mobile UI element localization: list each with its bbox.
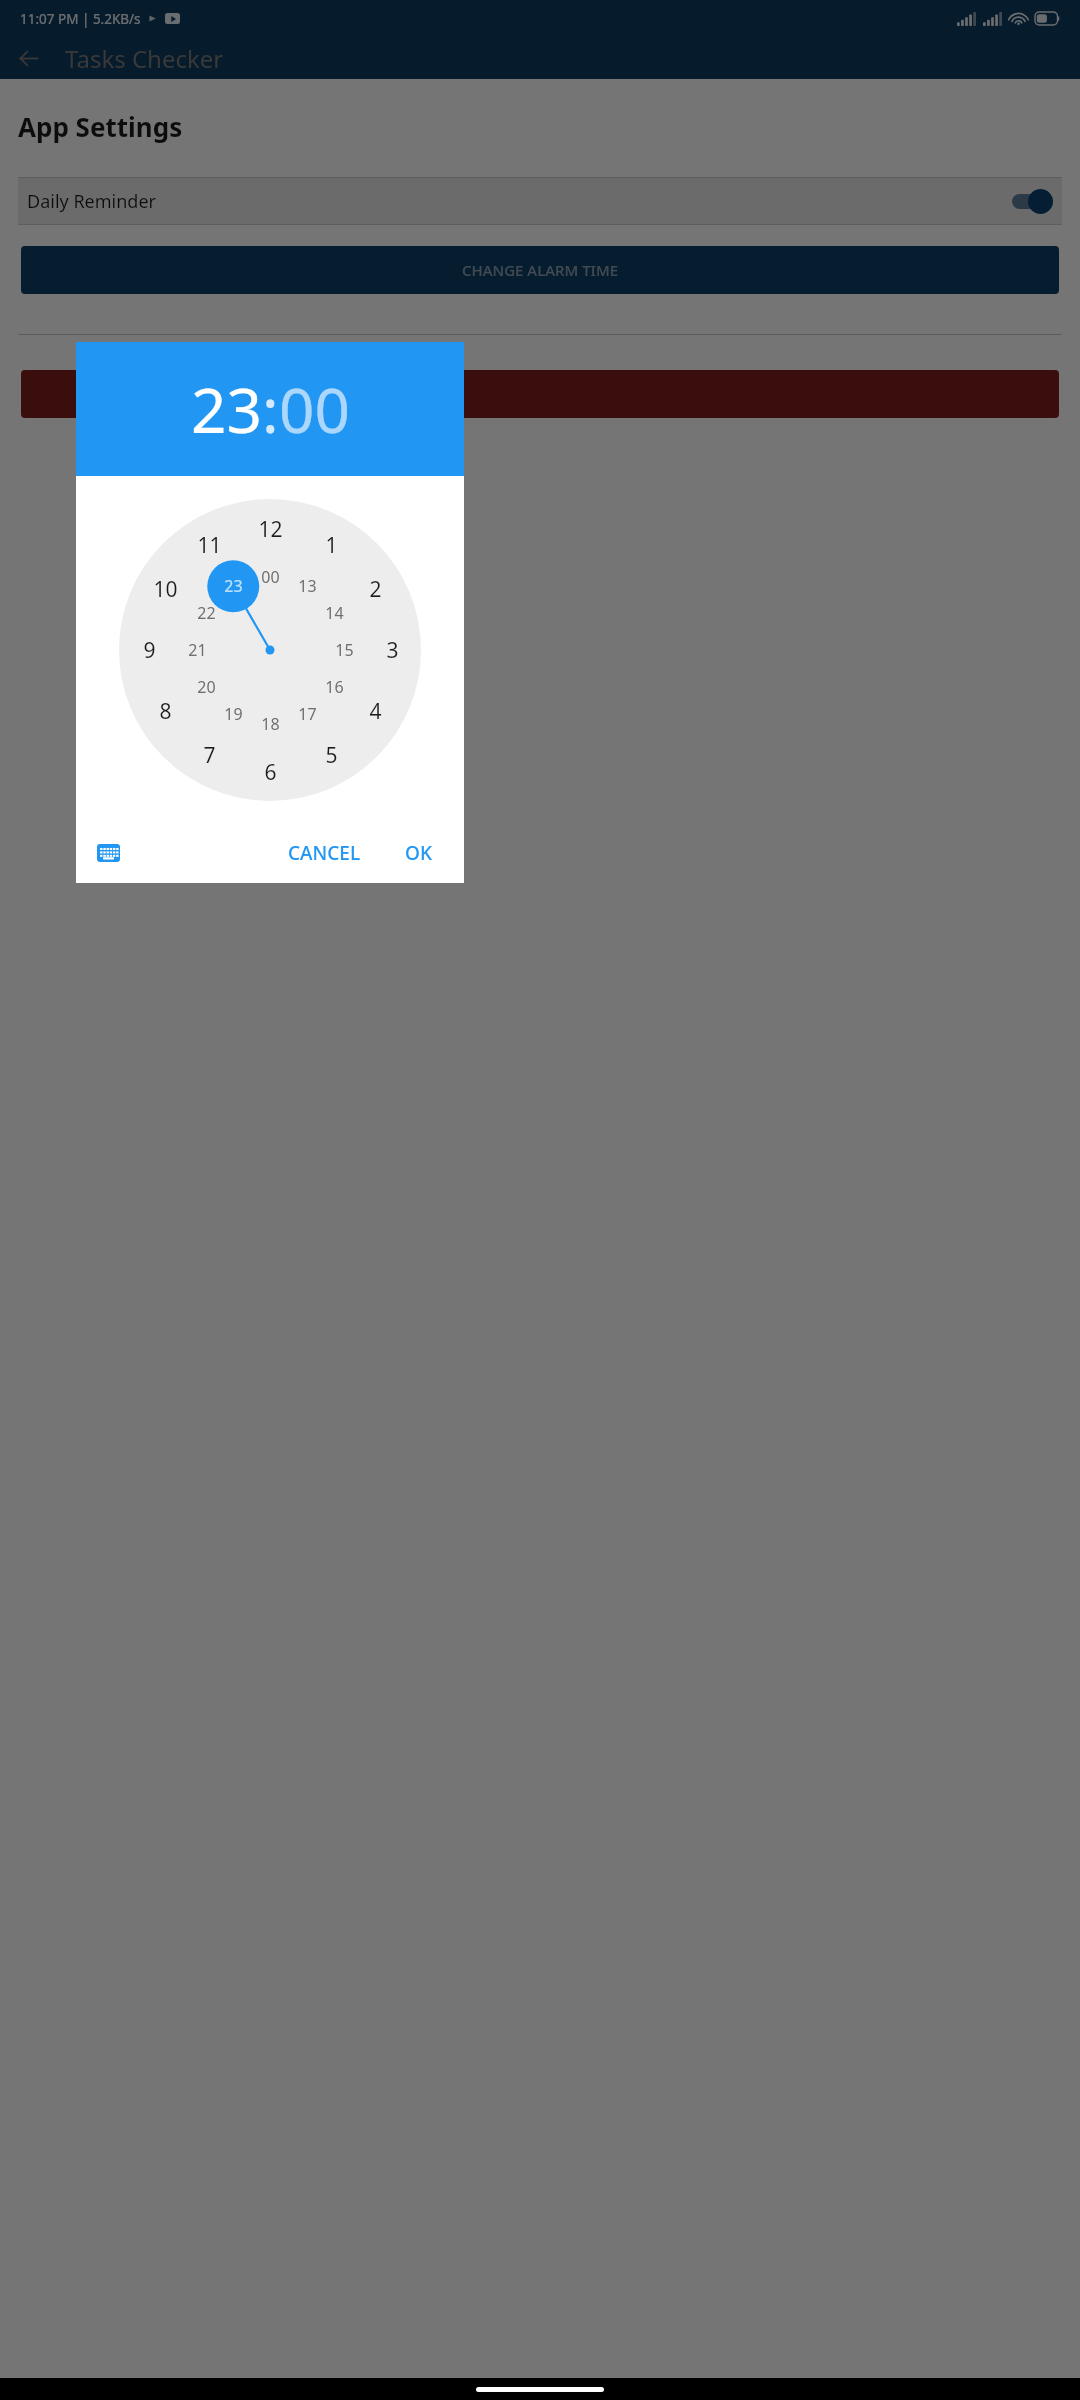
button[interactable]: 20: [197, 676, 216, 698]
button[interactable]: 7: [203, 741, 216, 770]
staticText: :: [262, 367, 279, 451]
button[interactable]: 15: [335, 639, 354, 661]
staticText: App Settings: [18, 109, 183, 144]
staticText: Daily Reminder: [27, 189, 156, 214]
button[interactable]: 13: [298, 575, 317, 597]
button[interactable]: 21: [188, 639, 207, 661]
button[interactable]: CANCEL: [278, 832, 371, 874]
button[interactable]: 3: [386, 636, 399, 665]
staticText: CANCEL: [288, 840, 361, 866]
button[interactable]: 9: [143, 636, 156, 665]
button[interactable]: 11: [197, 531, 222, 560]
button[interactable]: 6: [264, 758, 277, 787]
button[interactable]: 4: [369, 697, 382, 726]
staticText: 11:07 PM | 5.2KB/s: [20, 10, 141, 28]
button[interactable]: 19: [224, 703, 243, 725]
button[interactable]: 00: [261, 566, 280, 588]
button[interactable]: 16: [325, 676, 344, 698]
button[interactable]: 8: [159, 697, 172, 726]
button[interactable]: 1: [325, 531, 338, 560]
button[interactable]: [21, 370, 1059, 418]
button[interactable]: 12: [258, 515, 283, 544]
staticText: CHANGE ALARM TIME: [462, 260, 619, 280]
button[interactable]: 18: [261, 713, 280, 735]
button[interactable]: 22: [197, 602, 216, 624]
button[interactable]: 17: [298, 703, 317, 725]
button[interactable]: Switch to keyboard input: [90, 835, 126, 871]
button[interactable]: 23: [224, 575, 243, 597]
button[interactable]: 2: [369, 575, 382, 604]
button[interactable]: CHANGE ALARM TIME: [21, 246, 1059, 294]
button[interactable]: 14: [325, 602, 344, 624]
button[interactable]: 00: [279, 367, 350, 451]
button[interactable]: 5: [325, 741, 338, 770]
button[interactable]: Back: [10, 40, 46, 76]
button[interactable]: Daily Reminder: [18, 177, 1062, 225]
button[interactable]: 10: [153, 575, 178, 604]
button[interactable]: OK: [395, 832, 442, 874]
staticText: OK: [405, 840, 432, 866]
button[interactable]: 23: [191, 367, 262, 451]
staticText: Tasks Checker: [65, 42, 224, 75]
